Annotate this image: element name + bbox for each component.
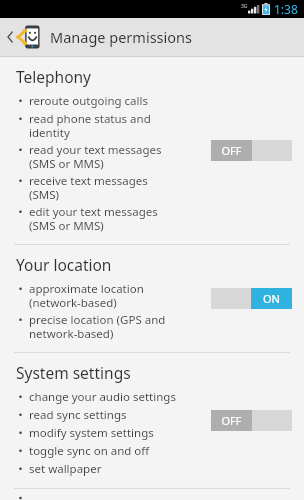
staticText: read sync settings	[29, 407, 179, 423]
button[interactable]: Permission off	[211, 410, 292, 431]
button[interactable]: Permission on	[211, 288, 292, 309]
staticText: Manage permissions	[50, 27, 192, 47]
staticText: approximate location (network-based)	[29, 281, 179, 310]
staticText: read phone status and identity	[29, 111, 179, 140]
staticText: System settings	[16, 362, 131, 383]
staticText: OFF	[221, 413, 242, 428]
staticText: set wallpaper	[29, 461, 179, 477]
staticText: OFF	[221, 143, 242, 158]
staticText: ON	[263, 291, 280, 306]
staticText: change your audio settings	[29, 389, 179, 405]
button[interactable]: Manage permissions	[0, 18, 304, 56]
staticText: modify system settings	[29, 425, 179, 441]
staticText: read your text messages (SMS or MMS)	[29, 142, 179, 171]
staticText: reroute outgoing calls	[29, 93, 179, 109]
staticText: Your location	[16, 254, 112, 275]
button[interactable]: Permission off	[211, 140, 292, 161]
staticText: Telephony	[16, 66, 91, 87]
staticText: 3G	[241, 3, 248, 10]
button[interactable]: Your location	[0, 245, 304, 352]
button[interactable]: System settings	[0, 353, 304, 488]
staticText: edit your text messages (SMS or MMS)	[29, 204, 179, 233]
staticText: 1:38	[274, 1, 298, 17]
staticText: receive text messages (SMS)	[29, 173, 179, 202]
button[interactable]: Camera & sound	[0, 489, 304, 500]
staticText: precise location (GPS and network-based)	[29, 312, 179, 341]
staticText: toggle sync on and off	[29, 443, 179, 459]
button[interactable]: Telephony	[0, 57, 304, 244]
